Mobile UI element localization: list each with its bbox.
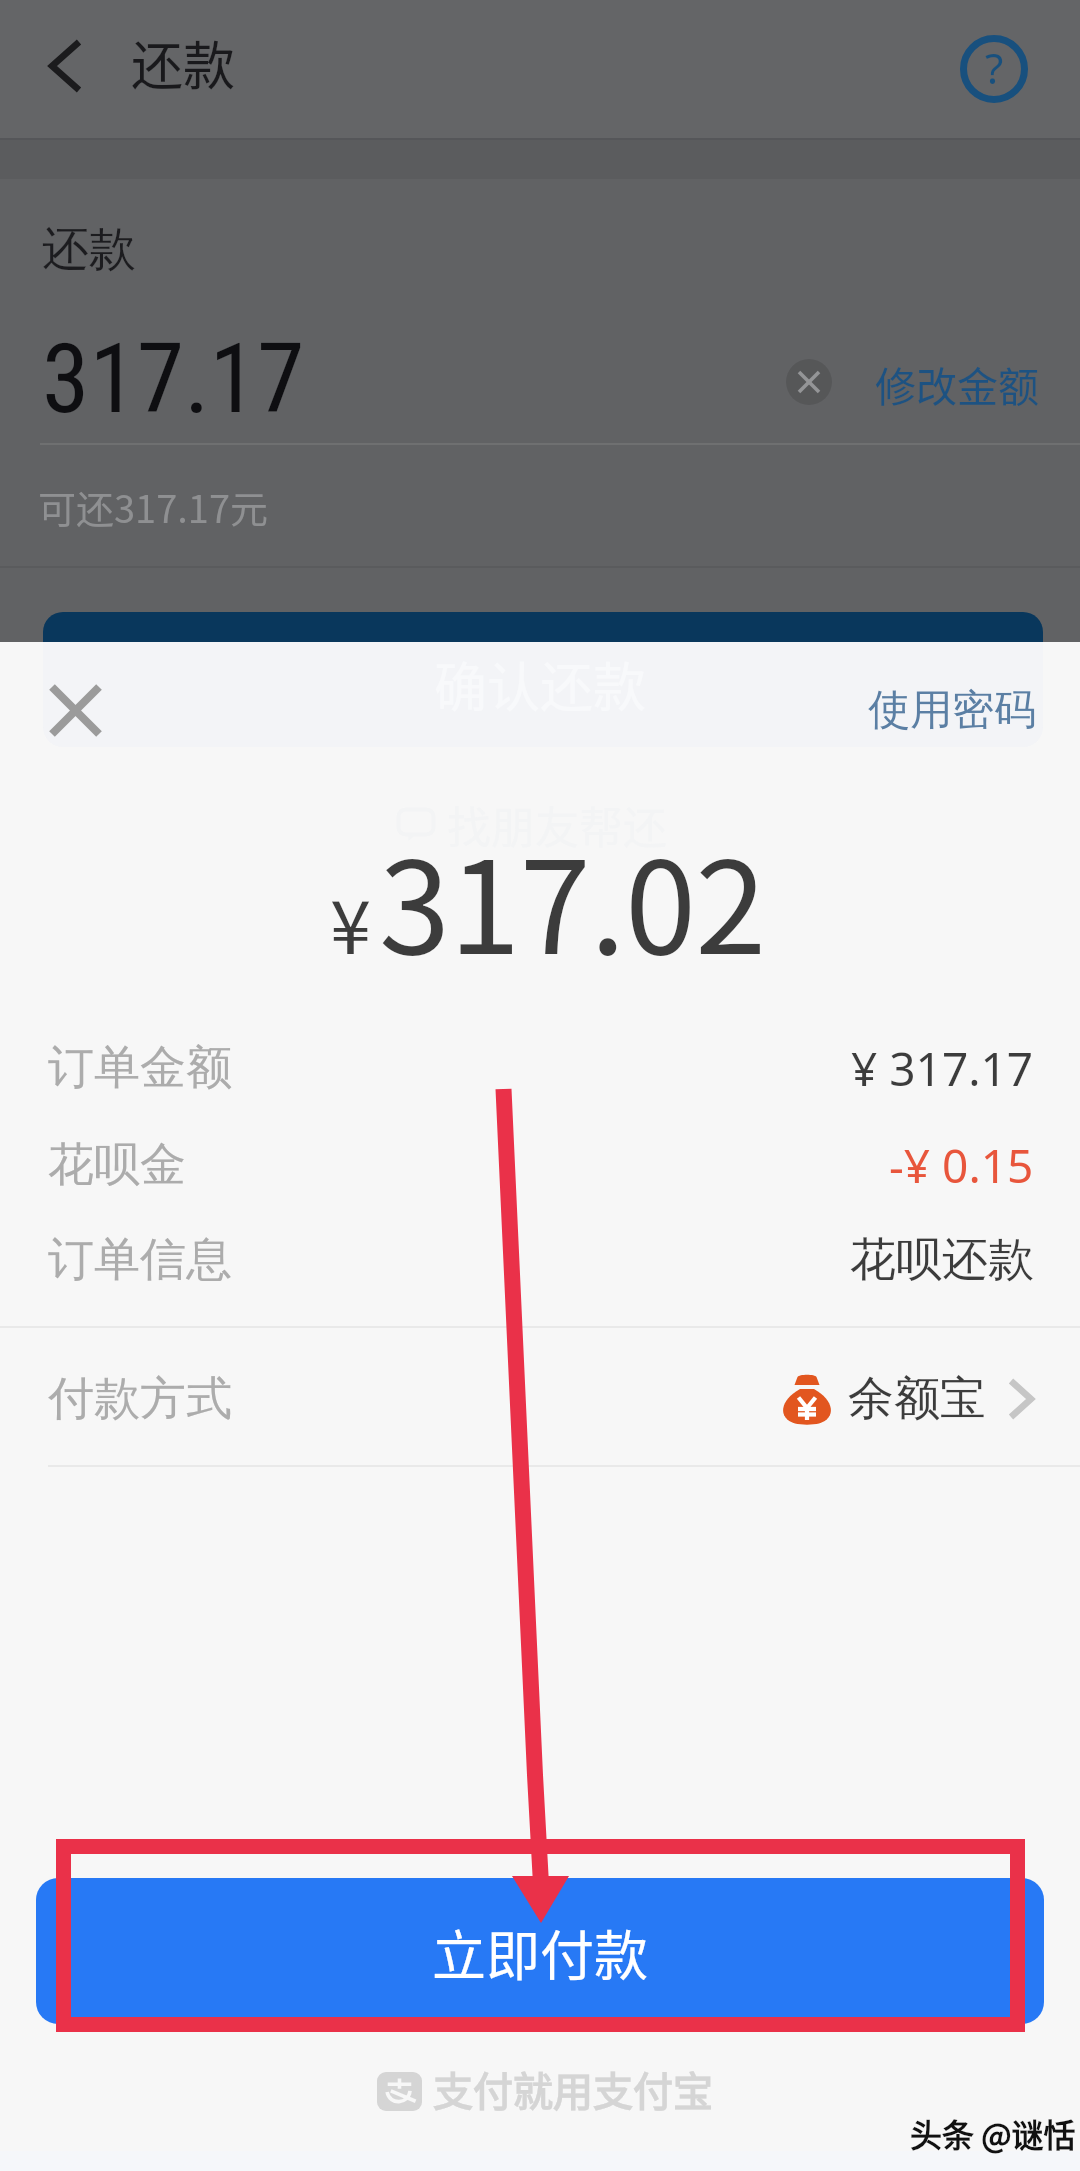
staticText: ¥ 317.17 <box>851 1037 1034 1100</box>
staticText: 可还317.17元 <box>38 479 269 534</box>
button[interactable]: Clear amount <box>786 359 832 405</box>
button[interactable]: 立即付款 <box>36 1878 1044 2024</box>
staticText: 317.17 <box>42 323 305 436</box>
staticText: 花呗还款 <box>850 1231 1034 1289</box>
staticText: 订单金额 <box>48 1039 232 1097</box>
staticText: 修改金额 <box>875 354 1039 413</box>
staticText: -¥ 0.15 <box>889 1134 1034 1197</box>
button[interactable]: Back <box>23 24 107 108</box>
button[interactable]: 付款方式 <box>0 1333 1080 1465</box>
button[interactable]: Help <box>954 29 1034 109</box>
staticText: ¥ <box>330 868 372 975</box>
staticText: 还款 <box>131 25 236 100</box>
staticText: 花呗金 <box>48 1136 186 1194</box>
button[interactable]: 确认还款 <box>43 612 1043 748</box>
staticText: 还款 <box>42 220 136 279</box>
button[interactable]: 修改金额 <box>875 354 1039 413</box>
staticText: 付款方式 <box>48 1370 232 1428</box>
staticText: 余额宝 <box>848 1370 986 1428</box>
staticText: 头条 @谜恬 <box>910 2110 1076 2156</box>
button[interactable]: 使用密码 <box>868 684 1036 737</box>
staticText: 订单信息 <box>48 1231 232 1289</box>
staticText: ? <box>985 39 1004 96</box>
staticText: 立即付款 <box>432 1913 648 1991</box>
button[interactable]: Close <box>32 667 118 753</box>
staticText: 支付就用支付宝 <box>433 2060 713 2118</box>
staticText: 使用密码 <box>868 684 1036 737</box>
staticText: 317.02 <box>379 806 766 991</box>
